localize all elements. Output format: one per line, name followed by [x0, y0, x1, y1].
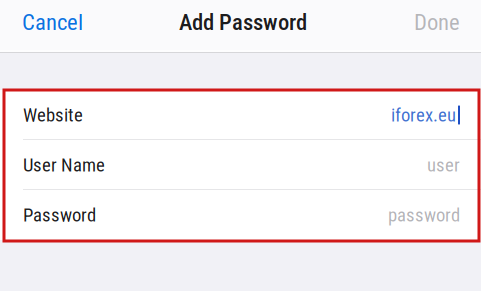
- staticText: password: [388, 204, 460, 226]
- staticText: Website: [23, 104, 83, 126]
- button[interactable]: Password: [0, 190, 481, 240]
- staticText: Add Password: [179, 9, 307, 36]
- button[interactable]: Done: [403, 3, 471, 42]
- button[interactable]: Website: [0, 90, 481, 140]
- staticText: user: [427, 154, 460, 176]
- staticText: Cancel: [22, 9, 83, 36]
- staticText: Password: [23, 204, 96, 226]
- button[interactable]: User Name: [0, 140, 481, 190]
- staticText: User Name: [23, 154, 105, 176]
- staticText: Done: [414, 9, 460, 36]
- button[interactable]: Cancel: [11, 3, 94, 42]
- staticText: iforex.eu: [391, 104, 456, 126]
